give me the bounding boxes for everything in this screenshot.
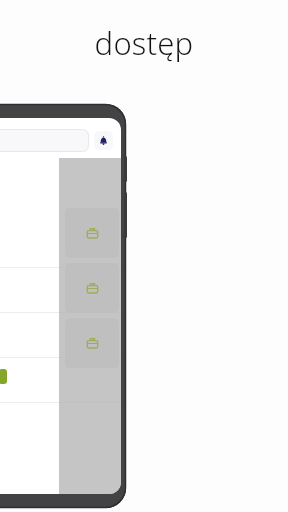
button[interactable]: nia [0,158,121,268]
button[interactable] [65,208,119,258]
staticText: dostęp [0,22,288,64]
button[interactable] [0,313,121,358]
button[interactable] [65,318,119,368]
button[interactable] [0,129,89,152]
button[interactable] [65,263,119,313]
button[interactable]: Notifications [94,131,113,150]
button[interactable] [0,358,121,403]
button[interactable] [0,268,121,313]
